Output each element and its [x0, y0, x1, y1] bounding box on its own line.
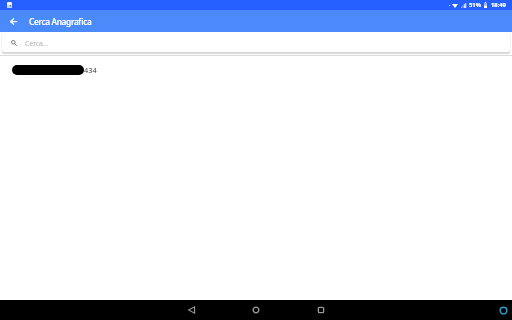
button[interactable]: Cerca...	[2, 34, 509, 52]
staticText: 51%	[469, 1, 481, 9]
staticText: Cerca...	[25, 39, 49, 48]
button[interactable]: Recent apps	[312, 300, 330, 320]
button[interactable]: Home	[247, 300, 265, 320]
button[interactable]: Back	[2, 10, 24, 32]
button[interactable]: 434	[0, 58, 512, 82]
staticText: Cerca Anagrafica	[29, 16, 92, 27]
staticText: 18:49	[491, 1, 506, 9]
button[interactable]: Assistant	[496, 300, 510, 320]
staticText: 434	[84, 65, 97, 75]
button[interactable]: Back	[183, 300, 201, 320]
